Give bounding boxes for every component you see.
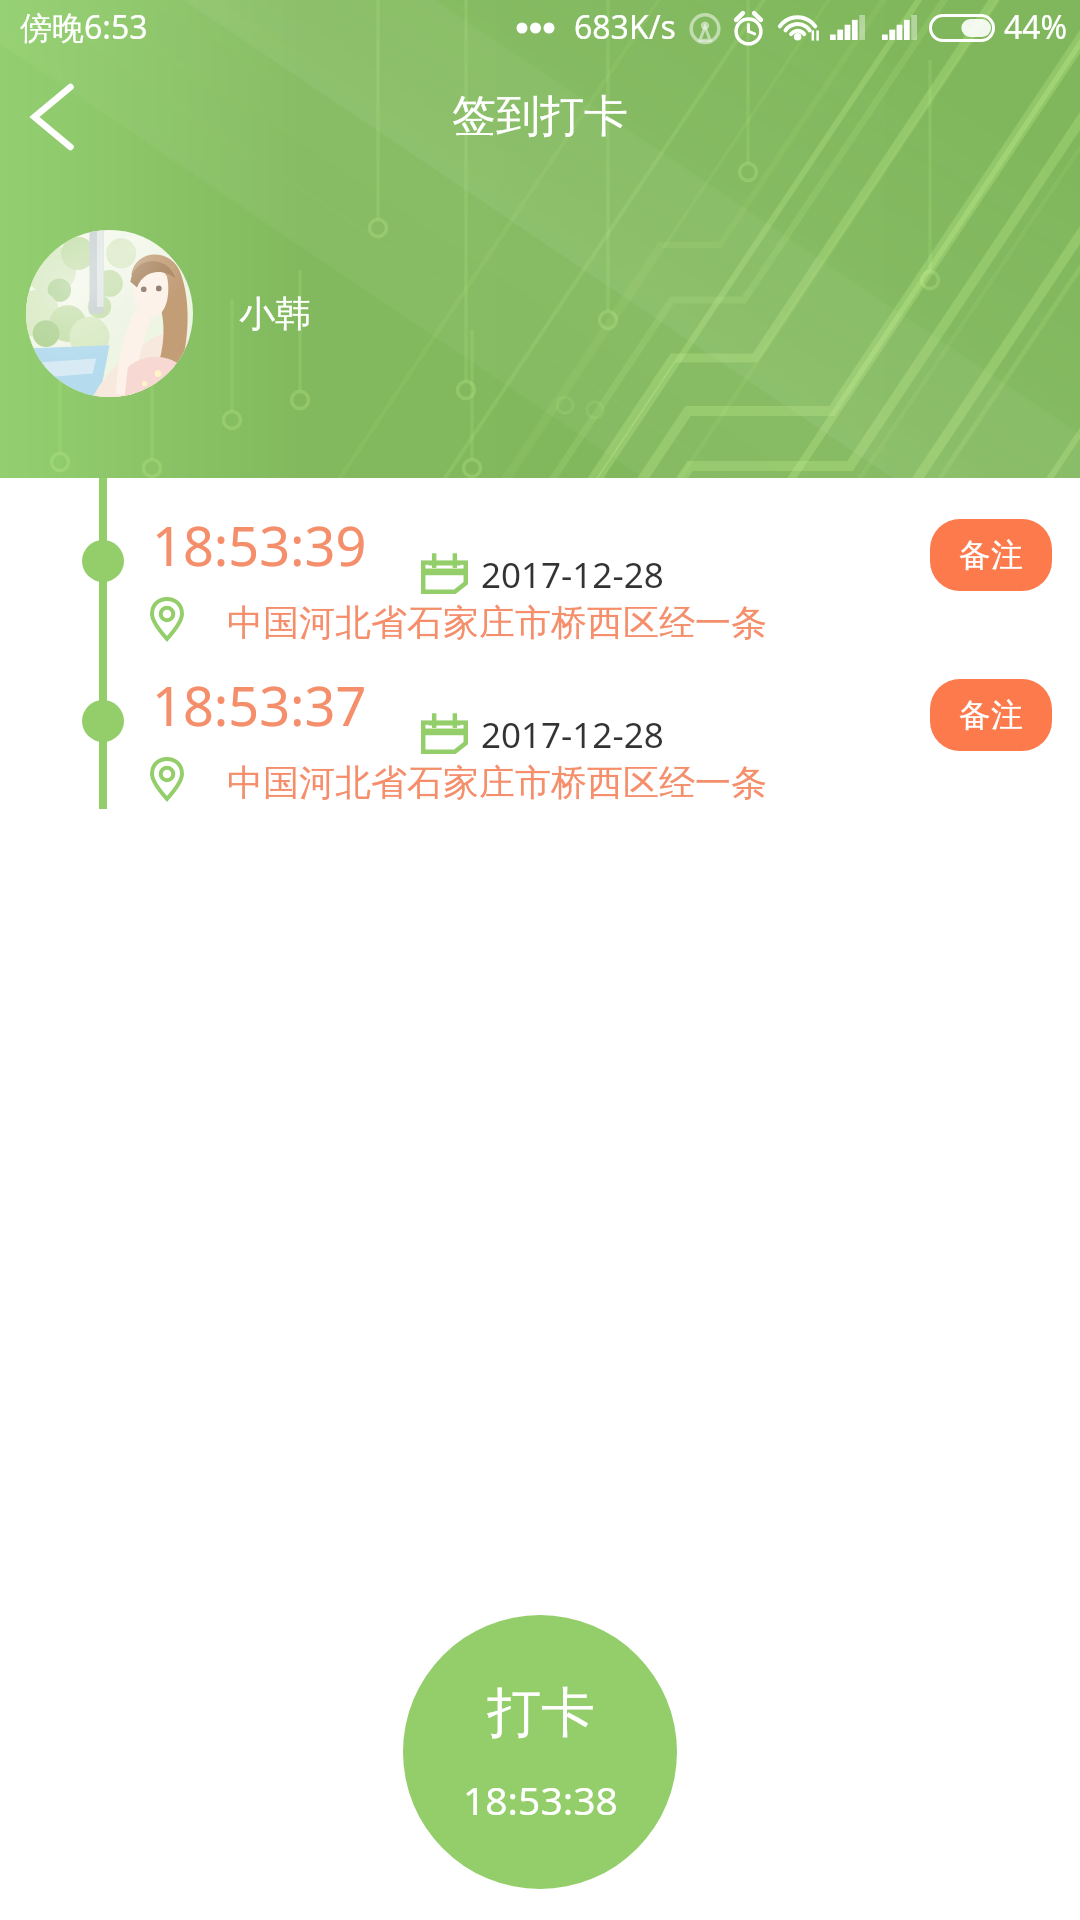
- staticText: 18:53:38: [463, 1773, 618, 1826]
- staticText: 小韩: [239, 291, 311, 336]
- staticText: 2017-12-28: [481, 711, 664, 759]
- staticText: 签到打卡: [452, 89, 628, 144]
- button[interactable]: 备注: [930, 679, 1052, 751]
- button[interactable]: 备注: [930, 519, 1052, 591]
- staticText: 中国河北省石家庄市桥西区经一条: [227, 600, 767, 645]
- staticText: 18:53:37: [152, 668, 367, 742]
- staticText: 18:53:39: [152, 508, 367, 582]
- staticText: 44%: [1004, 5, 1068, 49]
- button[interactable]: 打卡: [403, 1615, 677, 1889]
- staticText: 中国河北省石家庄市桥西区经一条: [227, 760, 767, 805]
- button[interactable]: Avatar: [26, 230, 193, 397]
- button[interactable]: Back: [8, 73, 96, 161]
- staticText: 2017-12-28: [481, 551, 664, 599]
- staticText: 打卡: [487, 1679, 595, 1747]
- staticText: 备注: [959, 535, 1023, 575]
- staticText: 683K/s: [574, 5, 676, 49]
- staticText: 备注: [959, 695, 1023, 735]
- staticText: 傍晚6:53: [20, 5, 148, 49]
